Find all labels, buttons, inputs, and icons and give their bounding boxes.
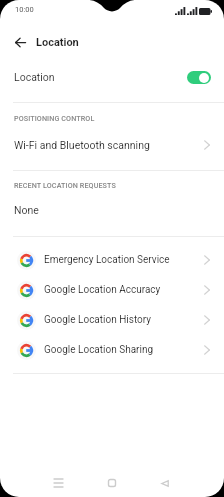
button[interactable]: Google Location History [0,305,224,335]
button[interactable]: Location [0,60,224,94]
button[interactable]: Google Location Sharing [0,335,224,365]
button[interactable]: Recent apps [47,472,69,494]
button[interactable]: Wi-Fi and Bluetooth scanning [0,131,224,159]
button[interactable]: Back [10,32,30,52]
button[interactable]: Emergency Location Service [0,245,224,275]
button[interactable]: Google Location Accuracy [0,275,224,305]
staticText: Google Location History [44,314,204,326]
staticText: Google Location Accuracy [44,284,204,296]
staticText: Google Location Sharing [44,344,204,356]
staticText: POSITIONING CONTROL [14,114,95,122]
staticText: 10:00 [15,5,34,14]
staticText: Emergency Location Service [44,254,204,266]
staticText: Location [14,71,187,83]
staticText: Wi-Fi and Bluetooth scanning [14,139,204,151]
button[interactable]: Back [154,472,176,494]
staticText: RECENT LOCATION REQUESTS [14,181,116,189]
staticText: None [14,204,39,216]
staticText: Location [36,36,79,49]
button[interactable]: Home [101,472,123,494]
